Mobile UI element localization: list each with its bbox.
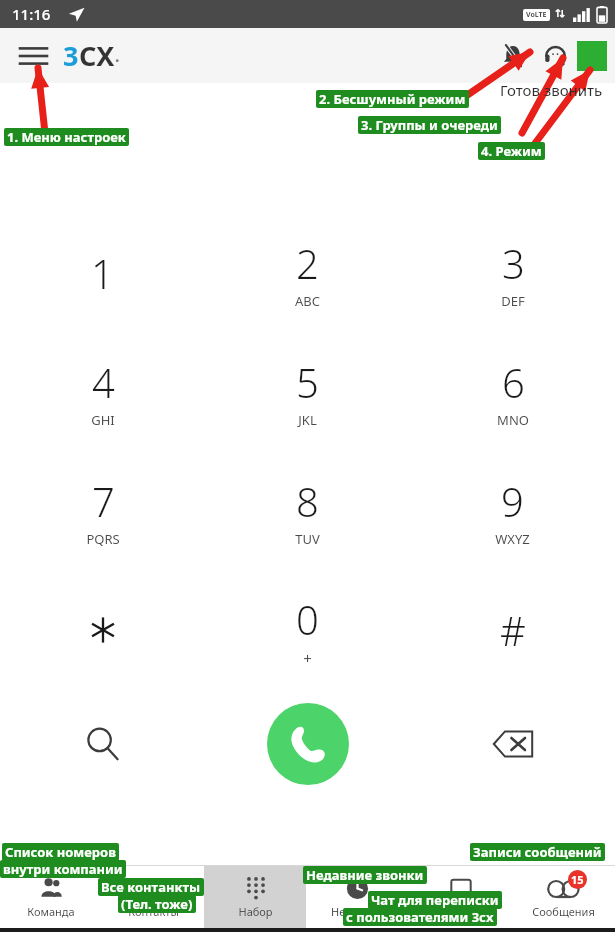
staticText: DEF [501, 292, 525, 310]
staticText: Все контанкты [101, 878, 201, 896]
staticText: 0 [296, 592, 319, 646]
staticText: Список номеров [5, 843, 116, 861]
staticText: Команда [27, 904, 75, 919]
staticText: (Тел. тоже) [121, 895, 193, 913]
button[interactable]: # [410, 570, 615, 689]
staticText: Записи сообщений [473, 843, 602, 861]
staticText: Контакты [128, 904, 179, 919]
button[interactable]: 0 [205, 570, 410, 689]
staticText: с пользователями 3сх [346, 908, 494, 926]
button[interactable]: Контакты [102, 866, 204, 928]
staticText: Чат для переписки [371, 891, 499, 909]
staticText: 2 [296, 236, 319, 290]
button[interactable]: Search [0, 689, 205, 799]
staticText: ABC [295, 292, 320, 310]
button[interactable]: Status [577, 41, 607, 71]
staticText: 5 [296, 355, 319, 409]
button[interactable]: 1 [0, 213, 205, 332]
staticText: Недавние [331, 904, 384, 919]
button[interactable]: Недавние [306, 866, 409, 928]
staticText: PQRS [86, 530, 120, 548]
button[interactable]: 8 [205, 451, 410, 570]
staticText: 11:16 [12, 4, 51, 24]
button[interactable]: 3 [410, 213, 615, 332]
button[interactable]: Menu [10, 33, 56, 79]
staticText: 15 [571, 872, 584, 887]
staticText: Набор [238, 904, 273, 919]
staticText: 3 [502, 236, 525, 290]
button[interactable]: Silent mode [493, 36, 533, 76]
button[interactable]: 2 [205, 213, 410, 332]
button[interactable]: Groups and queues [535, 36, 575, 76]
staticText: 7 [92, 474, 115, 528]
staticText: MNO [497, 411, 529, 429]
button[interactable]: 4 [0, 332, 205, 451]
staticText: JKL [298, 411, 317, 429]
staticText: WXYZ [495, 530, 530, 548]
button[interactable]: Чат [409, 866, 512, 928]
staticText: CX [79, 37, 115, 74]
button[interactable]: 15 [512, 866, 615, 928]
staticText: + [303, 648, 312, 668]
button[interactable]: Набор [204, 866, 306, 928]
staticText: GHI [91, 411, 115, 429]
staticText: Готов звонить [500, 80, 603, 100]
staticText: 4 [92, 355, 115, 409]
staticText: 1 [91, 246, 114, 300]
staticText: 3. Группы и очереди [361, 116, 498, 134]
staticText: 3 [63, 37, 79, 74]
staticText: Недавние звонки [306, 866, 424, 884]
staticText: 9 [501, 474, 524, 528]
staticText: VoLTE [526, 10, 547, 20]
staticText: Сообщения [532, 904, 595, 919]
button[interactable]: 5 [205, 332, 410, 451]
staticText: 4. Режим [481, 142, 542, 160]
button[interactable]: 6 [410, 332, 615, 451]
button[interactable]: Backspace [410, 689, 615, 799]
staticText: . [115, 45, 120, 67]
staticText: внутри компании [3, 860, 123, 878]
button[interactable]: 7 [0, 451, 205, 570]
button[interactable]: 9 [410, 451, 615, 570]
staticText: 6 [502, 355, 525, 409]
button[interactable] [0, 570, 205, 689]
staticText: TUV [295, 530, 320, 548]
staticText: # [500, 603, 526, 657]
staticText: Чат [452, 904, 471, 919]
staticText: 8 [296, 474, 319, 528]
button[interactable]: Call [267, 703, 349, 785]
staticText: 1. Меню настроек [7, 128, 126, 146]
button[interactable]: Команда [0, 866, 102, 928]
staticText: 2. Бесшумный режим [319, 90, 466, 108]
